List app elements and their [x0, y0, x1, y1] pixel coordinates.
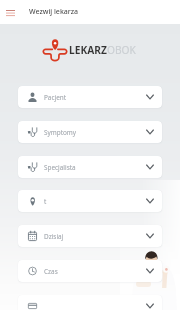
- button[interactable]: t: [18, 190, 162, 212]
- button[interactable]: Menu: [3, 5, 18, 20]
- staticText: Specjalista: [44, 163, 76, 172]
- button[interactable]: Symptomy: [18, 121, 162, 143]
- staticText: Czas: [44, 267, 58, 276]
- staticText: OBOK: [107, 43, 136, 57]
- button[interactable]: [18, 295, 162, 310]
- button[interactable]: Pacjent: [18, 86, 162, 108]
- button[interactable]: Czas: [18, 260, 162, 282]
- staticText: Wezwij lekarza: [29, 7, 79, 17]
- staticText: LEKARZ: [69, 43, 107, 57]
- staticText: Dzisiaj: [44, 232, 64, 241]
- staticText: t: [44, 197, 47, 206]
- button[interactable]: Dzisiaj: [18, 225, 162, 247]
- button[interactable]: Specjalista: [18, 156, 162, 178]
- staticText: Symptomy: [44, 128, 77, 137]
- staticText: Pacjent: [44, 93, 67, 102]
